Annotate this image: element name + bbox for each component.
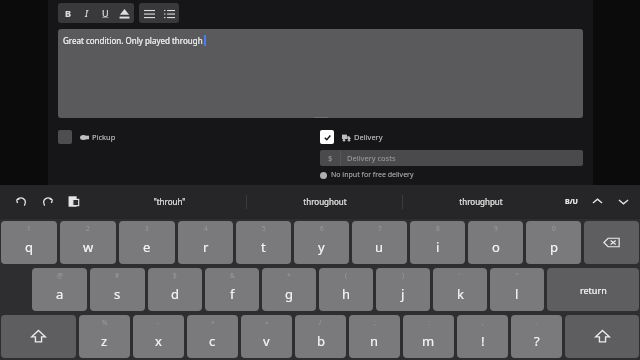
staticText: v — [263, 332, 270, 350]
staticText: Delivery — [354, 132, 383, 142]
staticText: & — [230, 271, 235, 280]
staticText: y — [318, 238, 325, 256]
button[interactable]: . — [511, 315, 562, 358]
button[interactable]: Bulleted list — [139, 3, 159, 23]
staticText: j — [401, 285, 405, 303]
button[interactable]: ) — [376, 268, 430, 311]
staticText: "throuh" — [153, 196, 186, 207]
staticText: x — [155, 332, 162, 350]
staticText: $ — [328, 153, 333, 163]
staticText: r — [203, 238, 209, 256]
staticText: 5 — [262, 224, 266, 233]
staticText: $ — [173, 271, 177, 280]
staticText: No input for free delivery — [331, 170, 414, 180]
staticText: Great condition. Only played through — [63, 35, 203, 46]
staticText: 2 — [86, 224, 90, 233]
button[interactable]: Paste — [60, 185, 86, 218]
staticText: m — [422, 332, 435, 350]
staticText: @ — [57, 271, 63, 280]
button[interactable]: Text formatting — [558, 185, 584, 218]
button[interactable]: , — [457, 315, 508, 358]
button[interactable]: 6 — [294, 221, 349, 264]
staticText: p — [550, 238, 558, 256]
button[interactable]: ; — [349, 315, 400, 358]
staticText: 6 — [320, 224, 324, 233]
button[interactable]: ( — [319, 268, 373, 311]
button[interactable]: 2 — [60, 221, 116, 264]
button[interactable]: I — [77, 3, 96, 23]
button[interactable]: Great condition. Only played through — [58, 29, 583, 118]
button[interactable]: % — [79, 315, 130, 358]
button[interactable]: Backspace — [584, 221, 639, 264]
button[interactable]: : — [403, 315, 454, 358]
staticText: n — [370, 332, 379, 350]
staticText: B — [65, 7, 71, 19]
button[interactable]: 7 — [352, 221, 407, 264]
staticText: , — [482, 318, 484, 327]
staticText: " — [516, 271, 519, 280]
staticText: h — [342, 285, 351, 303]
button[interactable]: ' — [433, 268, 487, 311]
button[interactable]: U — [96, 3, 115, 23]
staticText: f — [230, 285, 235, 303]
staticText: Pickup — [92, 132, 116, 142]
button[interactable]: 0 — [526, 221, 581, 264]
button[interactable]: 4 — [178, 221, 233, 264]
button[interactable]: @ — [32, 268, 87, 311]
staticText: : — [428, 318, 430, 327]
staticText: % — [102, 318, 108, 327]
staticText: ! — [481, 332, 485, 350]
button[interactable]: throughput — [403, 185, 558, 218]
staticText: s — [114, 285, 121, 303]
staticText: ) — [402, 271, 404, 280]
button[interactable]: # — [90, 268, 145, 311]
staticText: e — [143, 238, 151, 256]
button[interactable]: Pickup — [58, 130, 116, 144]
button[interactable]: 5 — [236, 221, 291, 264]
button[interactable]: throughout — [247, 185, 402, 218]
button[interactable]: Redo — [34, 185, 60, 218]
button[interactable]: & — [205, 268, 259, 311]
button[interactable]: return — [547, 268, 639, 311]
staticText: k — [457, 285, 464, 303]
staticText: o — [492, 238, 500, 256]
button[interactable]: Delivery — [320, 130, 383, 144]
button[interactable]: Shift — [565, 315, 639, 358]
button[interactable]: Text color — [115, 3, 134, 23]
button[interactable]: Next — [610, 185, 636, 218]
staticText: 3 — [145, 224, 149, 233]
button[interactable]: Undo — [8, 185, 34, 218]
button[interactable]: = — [241, 315, 292, 358]
staticText: - — [157, 318, 160, 327]
button[interactable]: Numbered list — [159, 3, 179, 23]
staticText: # — [115, 271, 120, 280]
button[interactable]: / — [295, 315, 346, 358]
staticText: * — [287, 271, 291, 280]
staticText: b — [317, 332, 325, 350]
button[interactable]: 3 — [119, 221, 175, 264]
button[interactable]: "throuh" — [92, 185, 246, 218]
button[interactable]: - — [133, 315, 184, 358]
button[interactable]: $ — [320, 150, 583, 166]
button[interactable]: " — [490, 268, 544, 311]
button[interactable]: Previous — [584, 185, 610, 218]
button[interactable]: * — [262, 268, 316, 311]
staticText: Delivery costs — [347, 153, 396, 163]
staticText: = — [265, 318, 269, 327]
staticText: 0 — [552, 224, 556, 233]
staticText: / — [319, 318, 322, 327]
staticText: U — [102, 7, 109, 19]
staticText: ? — [534, 332, 540, 350]
staticText: I — [85, 7, 88, 19]
button[interactable]: Shift — [1, 315, 76, 358]
staticText: . — [536, 318, 538, 327]
staticText: B/U — [565, 197, 578, 207]
button[interactable]: $ — [148, 268, 202, 311]
button[interactable]: B — [58, 3, 77, 23]
staticText: + — [211, 318, 215, 327]
button[interactable]: 9 — [468, 221, 523, 264]
button[interactable]: 1 — [1, 221, 57, 264]
staticText: w — [83, 238, 94, 256]
button[interactable]: 8 — [410, 221, 465, 264]
button[interactable]: + — [187, 315, 238, 358]
